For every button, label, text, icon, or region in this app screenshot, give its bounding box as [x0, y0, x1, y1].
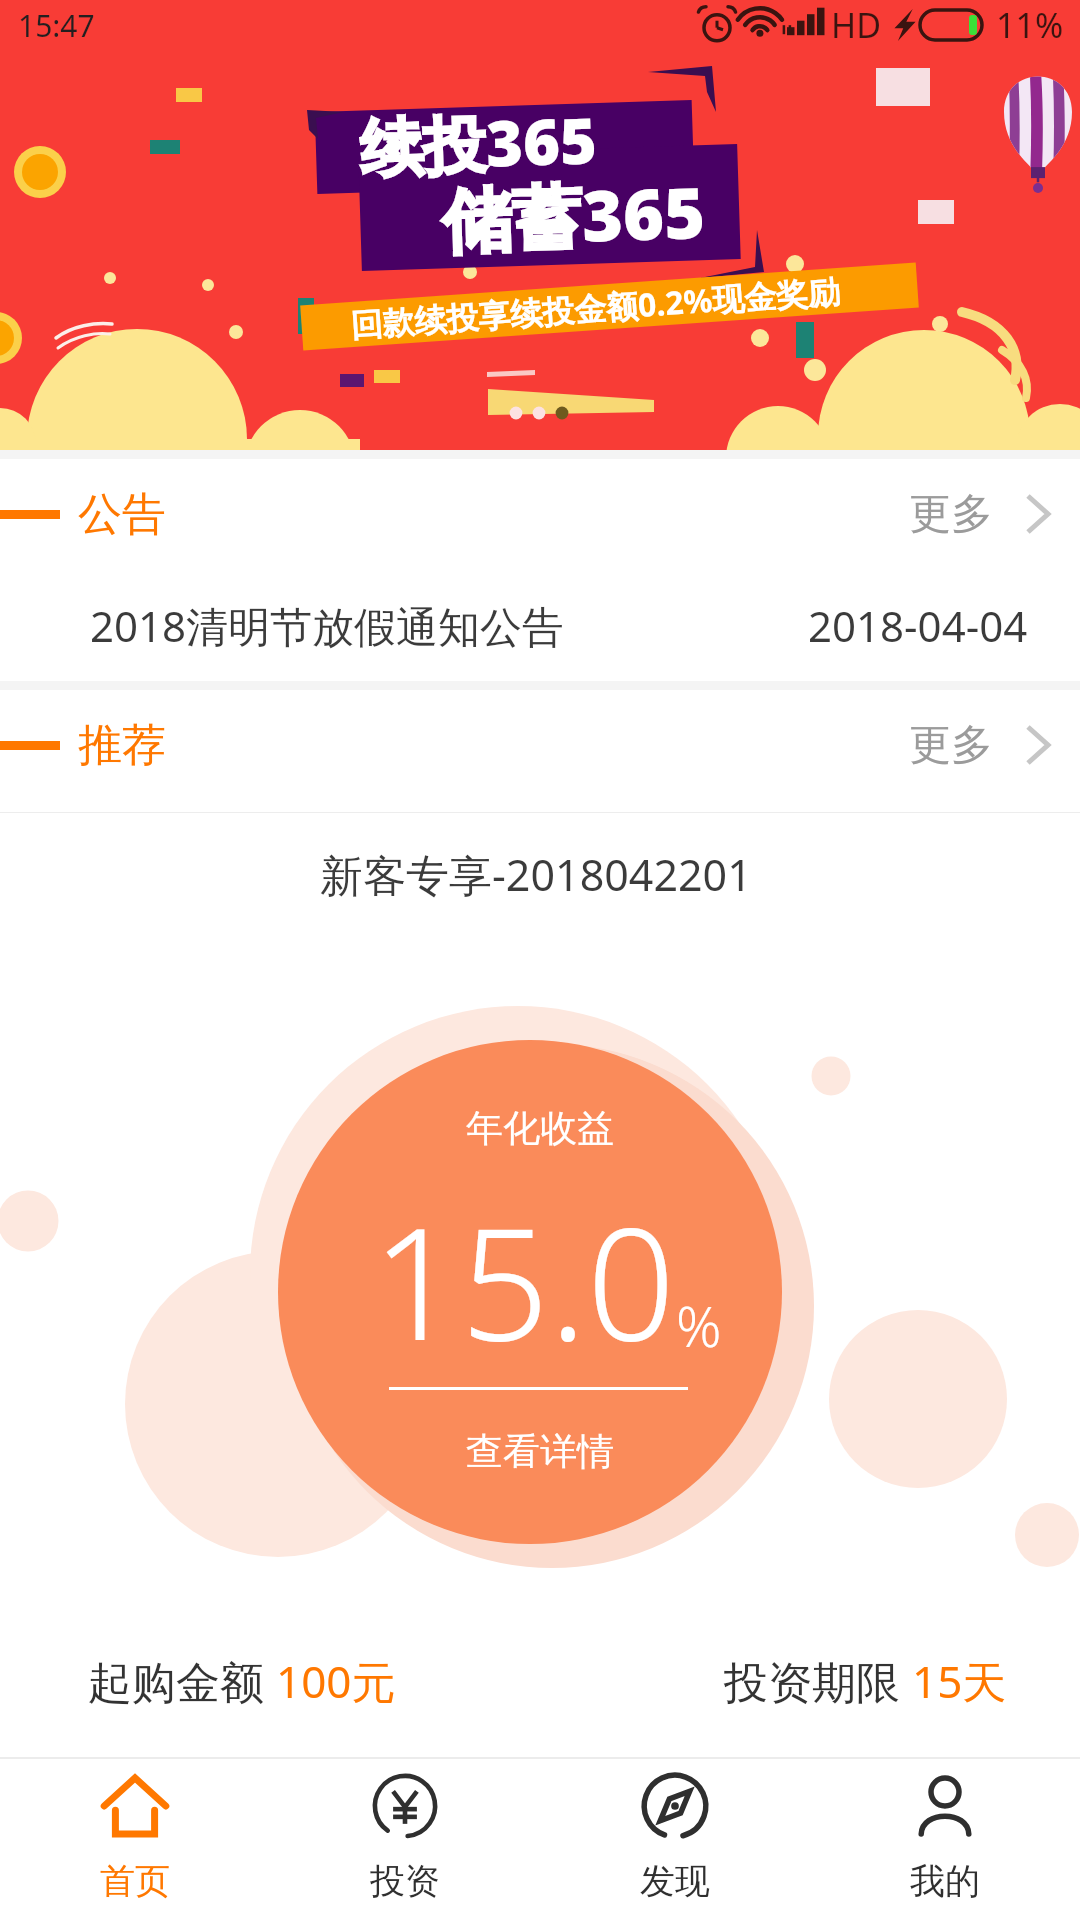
button[interactable]: Profile — [810, 1759, 1080, 1920]
staticText: 查看详情 — [466, 1428, 614, 1475]
button[interactable]: 年化收益 15.0% 查看详情 — [278, 1040, 782, 1544]
button[interactable]: 推荐 — [0, 690, 1080, 800]
staticText: 年化收益 — [466, 1105, 614, 1152]
button[interactable]: 2018清明节放假通知公告 — [0, 569, 1080, 681]
button[interactable]: 公告 — [0, 459, 1080, 569]
staticText: 更多 — [909, 719, 993, 772]
staticText: 储蓄365 — [441, 163, 707, 267]
button[interactable]: 更多 — [885, 459, 1080, 569]
staticText: 公告 — [78, 487, 166, 542]
button[interactable]: Discover — [540, 1759, 810, 1920]
staticText: 11% — [996, 2, 1064, 48]
staticText: 15.0 — [372, 1174, 676, 1385]
staticText: 回款续投享续投金额0.2%现金奖励 — [349, 269, 842, 347]
staticText: 100元 — [276, 1651, 396, 1711]
staticText: 我的 — [910, 1859, 980, 1903]
staticText: 新客专享-2018042201 — [320, 845, 752, 904]
staticText: 15天 — [912, 1651, 1007, 1711]
staticText: 投资 — [370, 1859, 440, 1903]
staticText: HD — [831, 2, 882, 48]
staticText: 推荐 — [78, 718, 166, 773]
button[interactable]: Invest — [270, 1759, 540, 1920]
staticText: 首页 — [100, 1859, 170, 1903]
button[interactable]: 更多 — [885, 690, 1080, 800]
staticText: 续投365 — [359, 96, 598, 190]
staticText: 2018-04-04 — [808, 597, 1028, 654]
staticText: % — [676, 1287, 722, 1363]
button[interactable]: 续投365 — [0, 50, 1080, 450]
staticText: 2018清明节放假通知公告 — [90, 597, 565, 654]
staticText: 起购金额 — [88, 1651, 276, 1711]
staticText: 投资期限 — [724, 1651, 912, 1711]
staticText: 15:47 — [18, 5, 95, 46]
staticText: 更多 — [909, 488, 993, 541]
button[interactable]: Home — [0, 1759, 270, 1920]
staticText: 发现 — [640, 1859, 710, 1903]
